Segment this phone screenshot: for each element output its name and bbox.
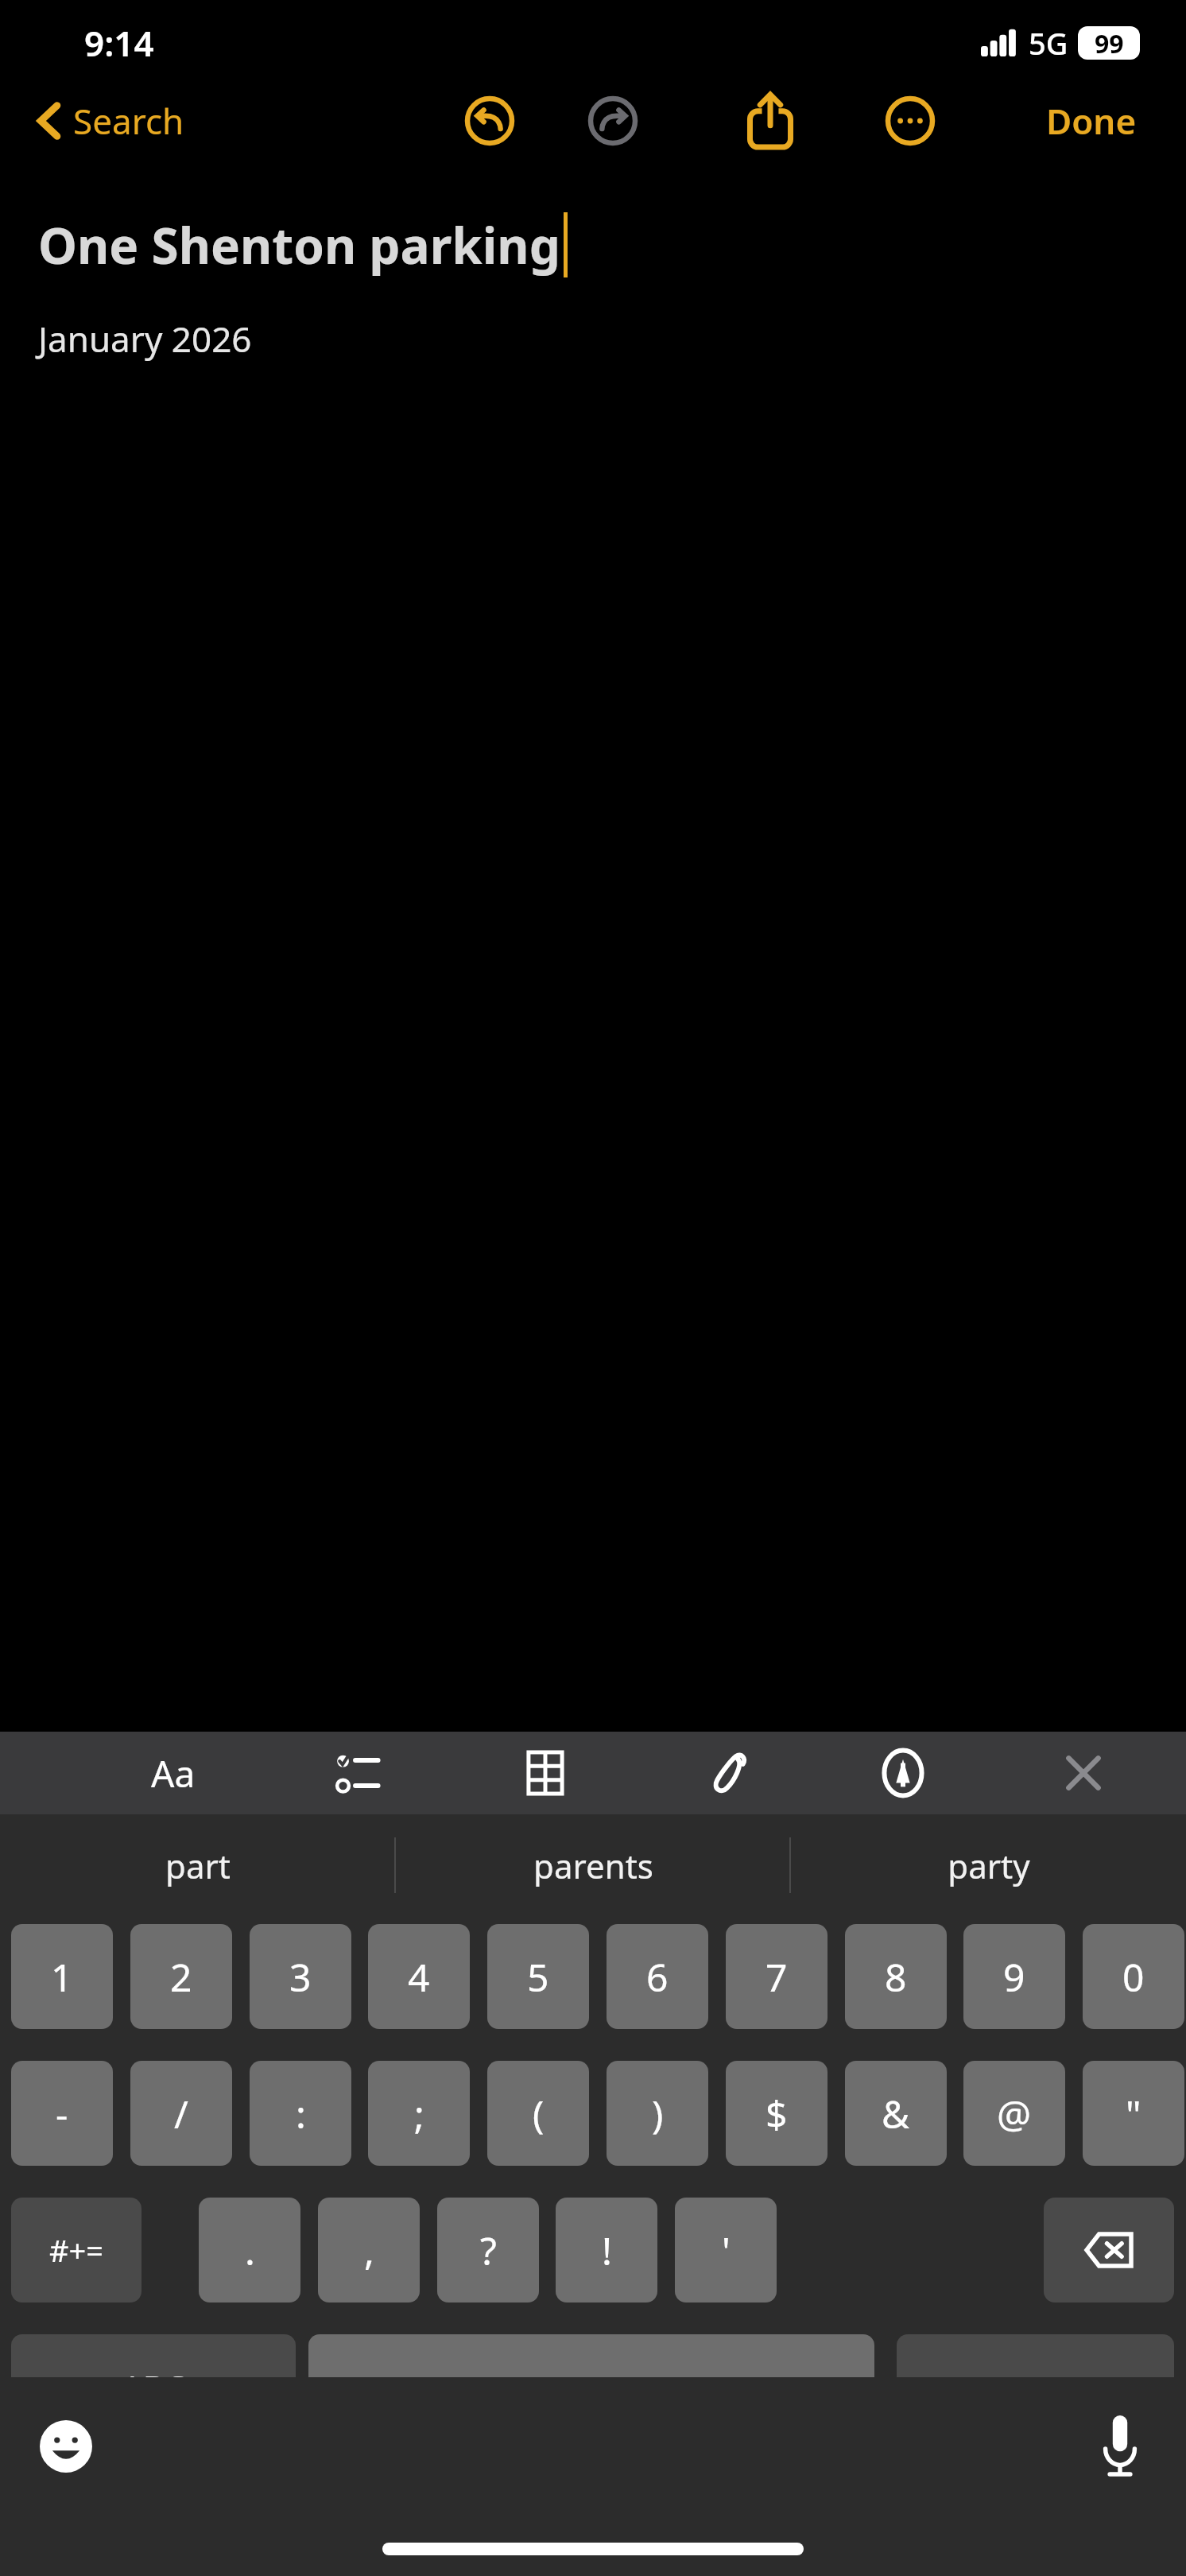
staticText: 9:14: [84, 19, 154, 67]
button[interactable]: !: [556, 2198, 657, 2302]
staticText: ": [1126, 2088, 1141, 2140]
staticText: Search: [73, 97, 184, 145]
button[interactable]: Redo: [588, 96, 638, 145]
staticText: 8: [885, 1951, 907, 2003]
button[interactable]: Attach: [687, 1732, 769, 1814]
button[interactable]: More: [886, 96, 935, 145]
staticText: 4: [408, 1951, 430, 2003]
button[interactable]: Close keyboard: [1042, 1732, 1125, 1814]
button[interactable]: party: [791, 1814, 1186, 1916]
button[interactable]: Dictation: [1076, 2403, 1164, 2490]
button[interactable]: .: [199, 2198, 300, 2302]
staticText: (: [533, 2088, 545, 2140]
staticText: 1: [51, 1951, 73, 2003]
staticText: !: [602, 2225, 612, 2276]
staticText: ABC: [122, 2365, 186, 2410]
staticText: return: [986, 2365, 1085, 2410]
button[interactable]: ': [675, 2198, 777, 2302]
button[interactable]: return: [897, 2334, 1174, 2439]
button[interactable]: 4: [368, 1924, 470, 2029]
button[interactable]: Backspace: [1044, 2198, 1174, 2302]
button[interactable]: ;: [368, 2061, 470, 2166]
staticText: ;: [414, 2088, 424, 2140]
staticText: $: [765, 2088, 788, 2140]
staticText: 9: [1003, 1951, 1025, 2003]
staticText: 99: [1095, 26, 1124, 60]
button[interactable]: ?: [437, 2198, 539, 2302]
button[interactable]: @: [963, 2061, 1065, 2166]
staticText: Aa: [151, 1748, 196, 1798]
staticText: 2: [170, 1951, 192, 2003]
staticText: party: [948, 1843, 1030, 1888]
button[interactable]: (: [487, 2061, 589, 2166]
button[interactable]: 6: [607, 1924, 708, 2029]
staticText: ,: [364, 2225, 374, 2276]
button[interactable]: parents: [396, 1814, 791, 1916]
button[interactable]: Search: [32, 89, 191, 153]
button[interactable]: space: [308, 2334, 874, 2439]
button[interactable]: /: [130, 2061, 232, 2166]
button[interactable]: 8: [845, 1924, 947, 2029]
button[interactable]: :: [250, 2061, 351, 2166]
staticText: ): [652, 2088, 664, 2140]
button[interactable]: -: [11, 2061, 113, 2166]
staticText: 7: [765, 1951, 788, 2003]
button[interactable]: Emoji: [22, 2403, 110, 2490]
staticText: -: [56, 2088, 68, 2140]
staticText: 5G: [1029, 22, 1068, 64]
button[interactable]: 0: [1083, 1924, 1184, 2029]
staticText: @: [997, 2088, 1032, 2140]
button[interactable]: 1: [11, 1924, 113, 2029]
button[interactable]: 7: [726, 1924, 827, 2029]
staticText: ': [722, 2225, 731, 2276]
staticText: 0: [1122, 1951, 1145, 2003]
button[interactable]: &: [845, 2061, 947, 2166]
staticText: One Shenton parking: [38, 211, 560, 278]
button[interactable]: 9: [963, 1924, 1065, 2029]
button[interactable]: 3: [250, 1924, 351, 2029]
button[interactable]: ,: [318, 2198, 420, 2302]
button[interactable]: Undo: [465, 96, 514, 145]
staticText: #+=: [49, 2229, 104, 2271]
staticText: 6: [646, 1951, 669, 2003]
button[interactable]: Markup: [862, 1732, 944, 1814]
button[interactable]: #+=: [11, 2198, 141, 2302]
staticText: &: [882, 2088, 910, 2140]
button[interactable]: part: [0, 1814, 396, 1916]
button[interactable]: Format: [130, 1732, 217, 1814]
staticText: /: [174, 2088, 188, 2140]
button[interactable]: 2: [130, 1924, 232, 2029]
button[interactable]: Done: [1038, 89, 1145, 153]
staticText: .: [245, 2225, 255, 2276]
staticText: 5: [527, 1951, 549, 2003]
button[interactable]: Table: [504, 1732, 587, 1814]
button[interactable]: ": [1083, 2061, 1184, 2166]
staticText: Done: [1046, 97, 1137, 145]
button[interactable]: 5: [487, 1924, 589, 2029]
staticText: part: [165, 1843, 231, 1888]
button[interactable]: Share: [747, 92, 793, 149]
staticText: ?: [480, 2225, 497, 2276]
staticText: parents: [533, 1843, 653, 1888]
button[interactable]: $: [726, 2061, 827, 2166]
button[interactable]: ): [607, 2061, 708, 2166]
button[interactable]: Checklist: [318, 1732, 401, 1814]
staticText: 3: [289, 1951, 312, 2003]
staticText: January 2026: [38, 315, 252, 363]
button[interactable]: ABC: [11, 2334, 296, 2439]
staticText: :: [296, 2088, 306, 2140]
staticText: space: [546, 2365, 637, 2410]
